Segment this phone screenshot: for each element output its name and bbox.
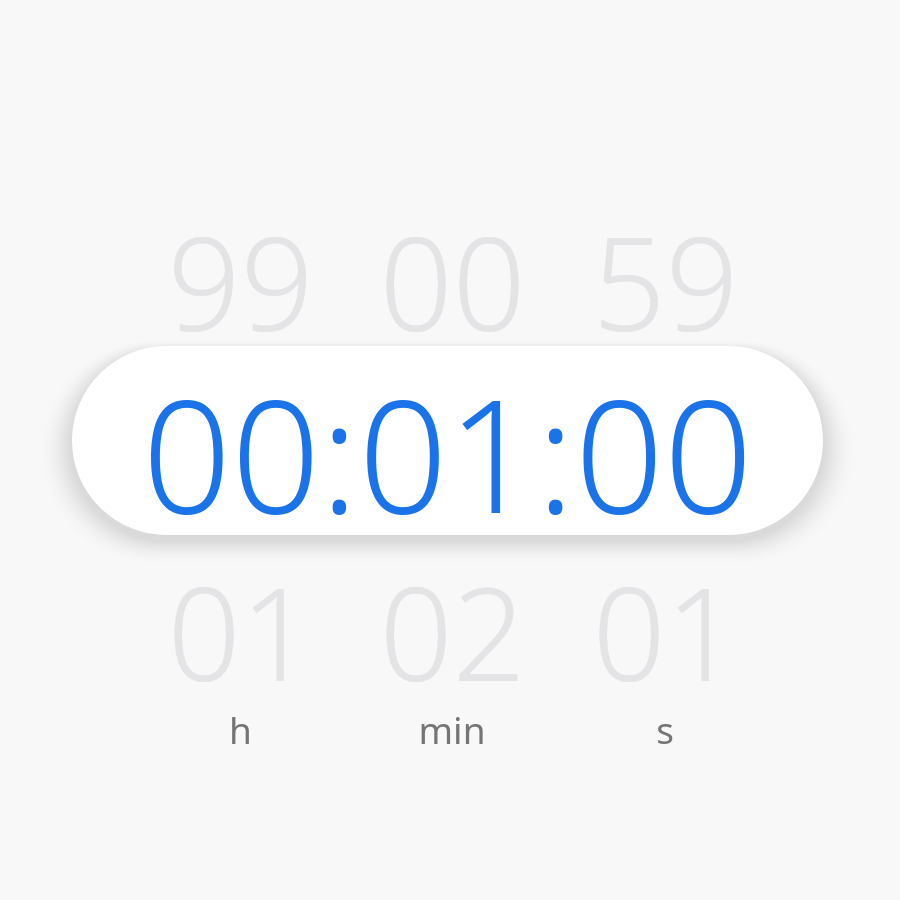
button[interactable]: 01 (555, 544, 775, 700)
button[interactable]: 01 (130, 544, 350, 700)
button[interactable]: 99 (130, 194, 350, 350)
staticText: 02 (379, 544, 526, 700)
button[interactable]: 02 (342, 544, 562, 700)
staticText: 00:01:00 (142, 346, 753, 535)
staticText: 01 (167, 544, 314, 700)
staticText: h (229, 704, 252, 754)
button[interactable]: s (595, 699, 735, 759)
button[interactable]: Selected duration 00:01:00 (72, 346, 823, 535)
button[interactable]: 00 (342, 194, 562, 350)
staticText: 01 (592, 544, 739, 700)
button[interactable]: h (170, 699, 310, 759)
staticText: 00 (379, 194, 526, 350)
staticText: s (656, 704, 674, 754)
button[interactable]: 59 (555, 194, 775, 350)
button[interactable]: min (382, 699, 522, 759)
staticText: 59 (592, 194, 739, 350)
staticText: 99 (167, 194, 314, 350)
staticText: min (418, 704, 486, 754)
